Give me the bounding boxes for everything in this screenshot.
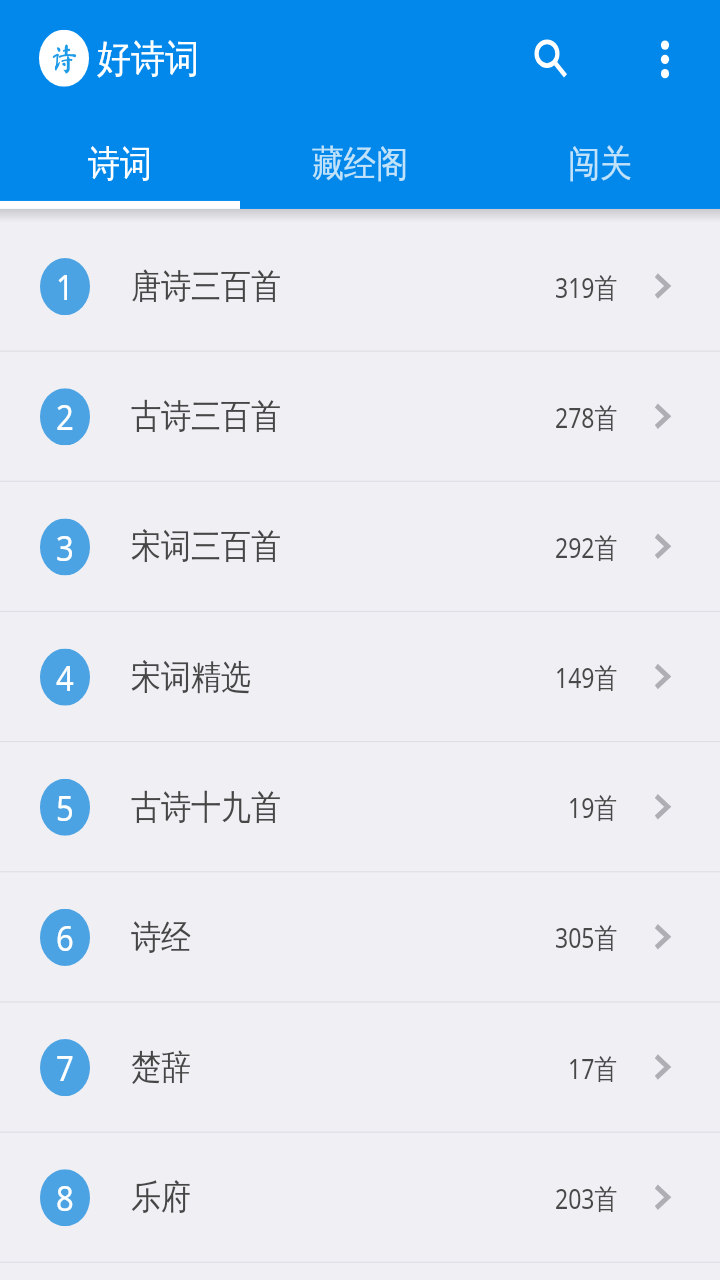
button[interactable]: 2 <box>0 352 720 481</box>
staticText: 楚辞 <box>131 1046 191 1089</box>
button[interactable]: 7 <box>0 1002 720 1131</box>
staticText: 宋词精选 <box>131 655 251 699</box>
button[interactable]: More options <box>629 18 701 100</box>
staticText: 诗词 <box>88 140 152 186</box>
staticText: 3 <box>56 523 74 571</box>
staticText: 乐府 <box>131 1176 191 1219</box>
staticText: 149首 <box>555 658 618 695</box>
staticText: 4 <box>56 653 74 701</box>
button[interactable]: 5 <box>0 742 720 871</box>
staticText: 宋词三百首 <box>131 525 281 569</box>
button[interactable]: Search <box>517 22 589 104</box>
button[interactable]: 8 <box>0 1133 720 1262</box>
staticText: 8 <box>56 1174 74 1222</box>
staticText: 1 <box>56 263 74 311</box>
staticText: 305首 <box>555 918 618 956</box>
staticText: 6 <box>56 913 74 961</box>
staticText: 319首 <box>555 267 618 305</box>
button[interactable]: 3 <box>0 482 720 611</box>
staticText: 闯关 <box>568 140 632 186</box>
button[interactable]: 4 <box>0 612 720 741</box>
staticText: 古诗十九首 <box>131 786 281 829</box>
staticText: 2 <box>56 393 74 441</box>
staticText: 203首 <box>555 1178 618 1216</box>
staticText: 5 <box>56 783 74 831</box>
button[interactable]: 藏经阁 <box>240 116 480 209</box>
staticText: 唐诗三百首 <box>131 265 281 308</box>
button[interactable]: 闯关 <box>480 116 720 209</box>
staticText: 藏经阁 <box>312 140 408 186</box>
staticText: 好诗词 <box>97 34 199 83</box>
staticText: 7 <box>56 1044 74 1092</box>
staticText: 诗 <box>51 42 78 73</box>
button[interactable]: 1 <box>0 221 720 350</box>
staticText: 诗经 <box>131 916 191 959</box>
button[interactable]: 诗词 <box>0 116 240 209</box>
staticText: 17首 <box>568 1048 618 1086</box>
staticText: 古诗三百首 <box>131 395 281 438</box>
staticText: 292首 <box>555 527 618 565</box>
staticText: 278首 <box>555 397 618 435</box>
button[interactable]: 6 <box>0 872 720 1001</box>
staticText: 19首 <box>568 788 618 826</box>
